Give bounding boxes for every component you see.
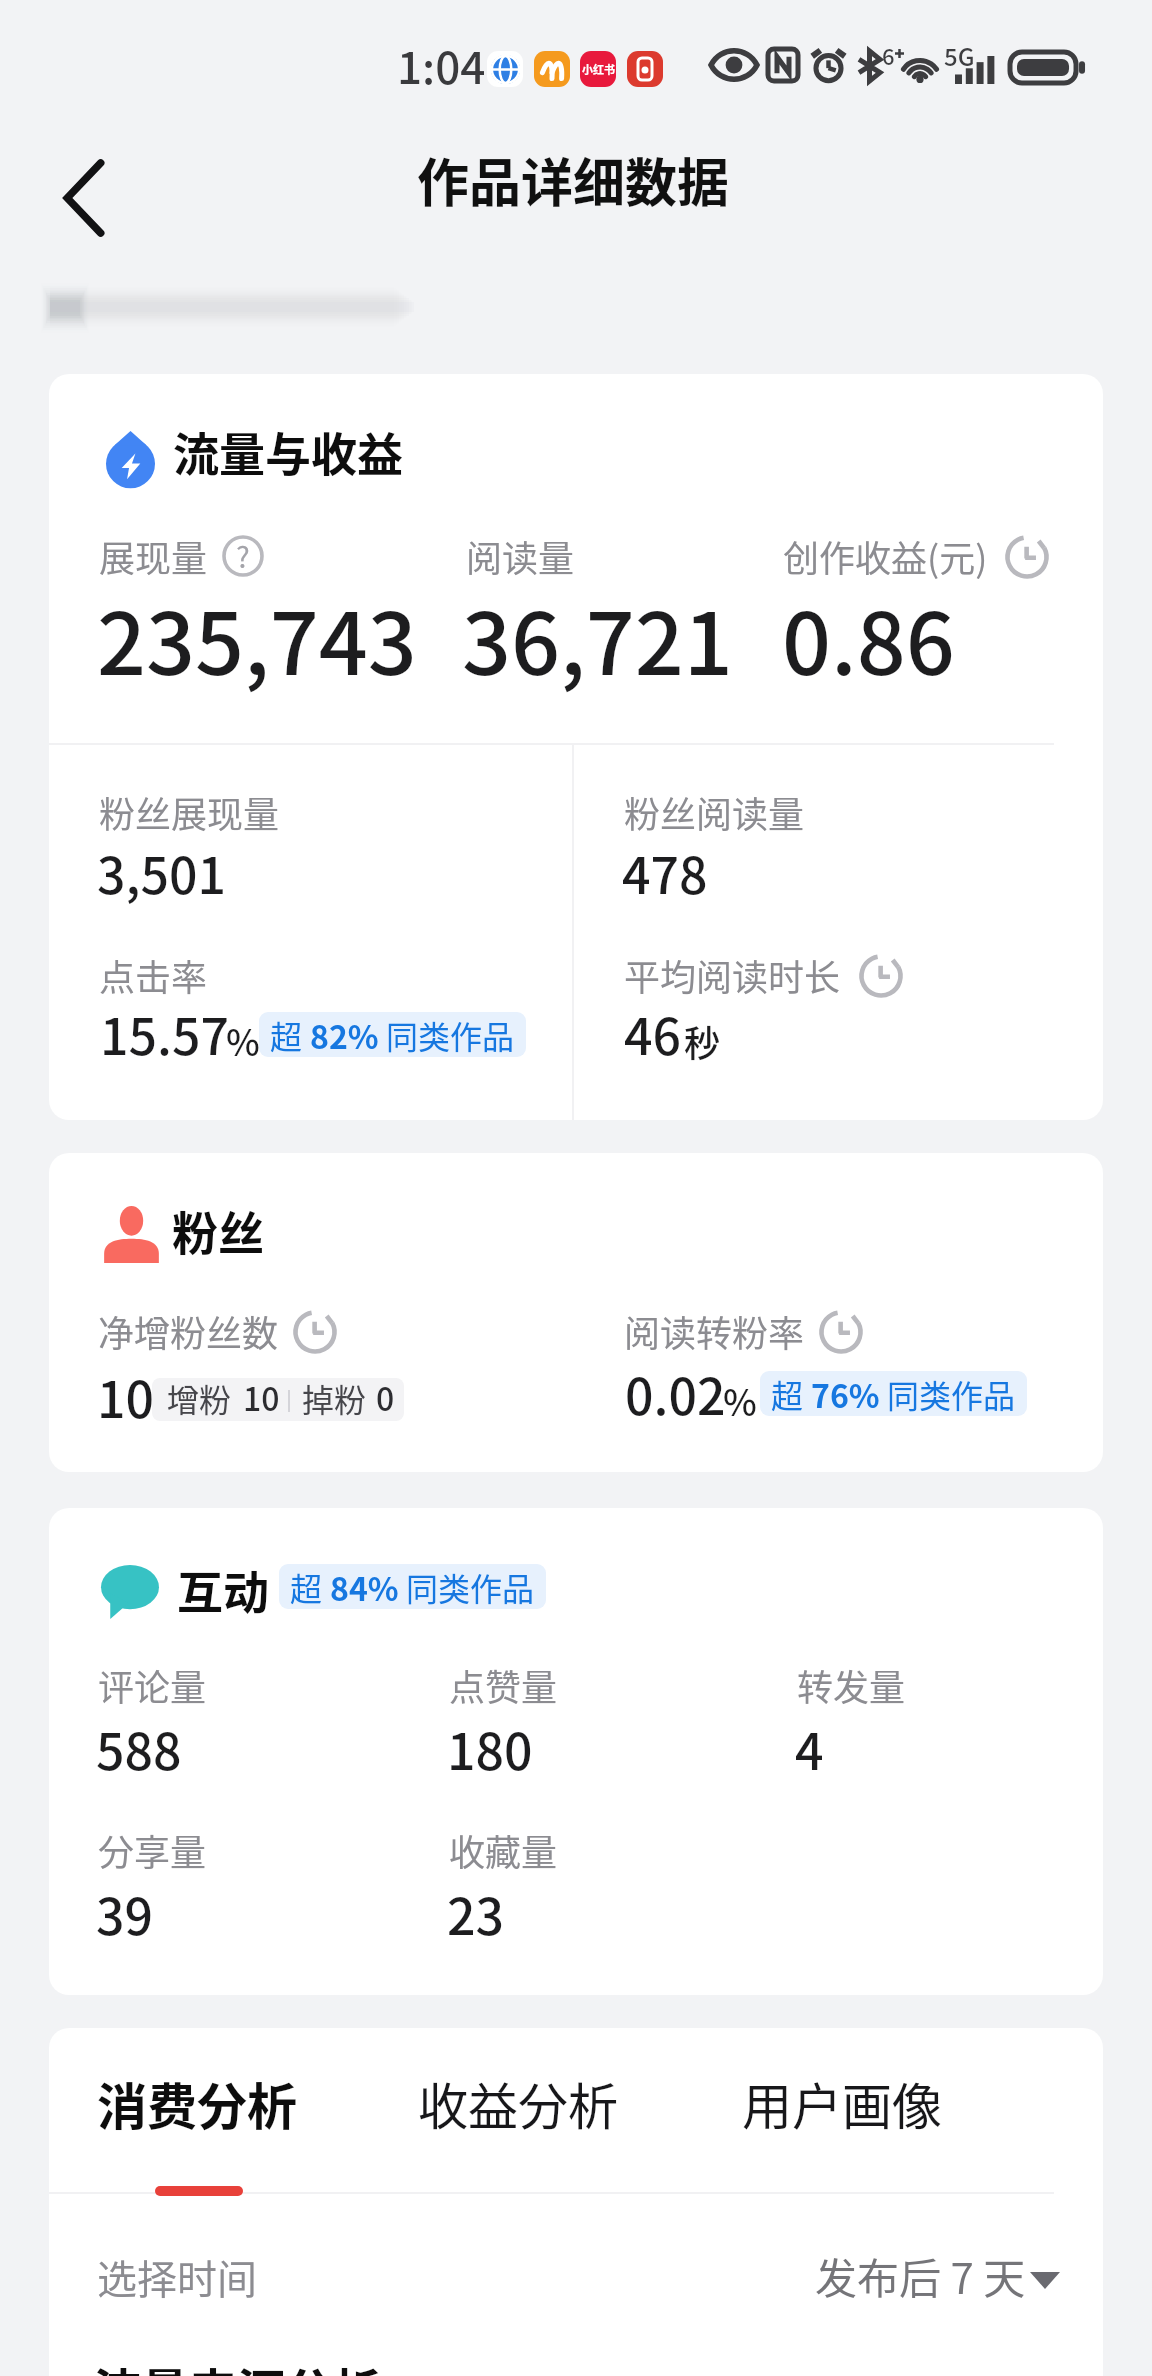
staticText: 用户画像 xyxy=(742,2067,942,2139)
staticText: 分享量 xyxy=(98,1824,207,1876)
button[interactable]: 点击率 15.57% xyxy=(95,950,555,1075)
staticText: 阅读量 xyxy=(466,530,575,582)
staticText: 超 xyxy=(270,1012,303,1057)
staticText: 46 xyxy=(624,997,681,1069)
staticText: 84% xyxy=(330,1564,399,1609)
staticText: % xyxy=(226,1014,260,1066)
staticText: 小红书 xyxy=(582,61,615,77)
staticText: 流量来源分析 xyxy=(93,2353,382,2376)
staticText: 0.86 xyxy=(782,575,955,700)
staticText: 评论量 xyxy=(98,1659,207,1711)
staticText: 互动 xyxy=(177,1556,269,1623)
staticText: % xyxy=(723,1374,757,1426)
staticText: 阅读转粉率 xyxy=(624,1305,805,1357)
button[interactable]: 平均阅读时长 46秒 xyxy=(620,950,1080,1075)
staticText: 作品详细数据 xyxy=(417,142,730,217)
button[interactable]: Net new followers updated periodically xyxy=(293,1310,337,1354)
staticText: 秒 xyxy=(684,1015,721,1067)
button[interactable]: 点赞量 180 xyxy=(446,1660,786,1785)
button[interactable]: Back xyxy=(21,128,147,268)
staticText: 点赞量 xyxy=(449,1659,558,1711)
staticText: 粉丝阅读量 xyxy=(624,786,805,838)
button[interactable]: 展现量 235,743 xyxy=(95,530,425,680)
staticText: 15.57 xyxy=(100,997,229,1069)
button[interactable]: 创作收益 0.86 元 xyxy=(780,530,1080,680)
button[interactable]: 阅读量 36,721 xyxy=(460,530,760,680)
staticText: 同类作品 xyxy=(406,1564,535,1609)
staticText: 6 xyxy=(882,39,895,71)
staticText: 0 xyxy=(376,1374,395,1420)
button[interactable]: Revenue updated periodically xyxy=(1005,535,1049,579)
staticText: 0.02 xyxy=(625,1357,726,1429)
staticText: 3,501 xyxy=(97,836,226,908)
staticText: 选择时间 xyxy=(97,2248,257,2306)
staticText: 588 xyxy=(96,1712,182,1784)
staticText: 收益分析 xyxy=(418,2067,618,2139)
staticText: 净增粉丝数 xyxy=(98,1305,279,1357)
button[interactable]: 转发量 4 xyxy=(794,1660,1094,1785)
staticText: 掉粉 xyxy=(302,1375,367,1421)
staticText: 180 xyxy=(447,1712,533,1784)
staticText: 收藏量 xyxy=(449,1824,558,1876)
staticText: 76% xyxy=(811,1371,880,1416)
staticText: 5G xyxy=(944,38,975,73)
staticText: 超 xyxy=(290,1564,323,1609)
staticText: 36,721 xyxy=(462,575,733,700)
staticText: 点击率 xyxy=(99,949,208,1001)
button[interactable]: 消费分析 xyxy=(74,2060,324,2152)
button[interactable]: Follower conversion updated periodically xyxy=(819,1310,863,1354)
staticText: 同类作品 xyxy=(887,1371,1016,1416)
staticText: 增粉 xyxy=(167,1375,232,1421)
staticText: 超 xyxy=(771,1371,804,1416)
staticText: 10 xyxy=(243,1374,280,1420)
staticText: ? xyxy=(236,534,250,576)
button[interactable]: 收益分析 xyxy=(397,2060,637,2152)
staticText: 平均阅读时长 xyxy=(624,949,841,1001)
staticText: 478 xyxy=(622,836,708,908)
button[interactable]: 评论量 588 xyxy=(95,1660,435,1785)
button[interactable]: 粉丝展现量 3,501 xyxy=(95,786,555,906)
staticText: 1:04 xyxy=(397,33,486,97)
staticText: 39 xyxy=(96,1877,153,1949)
staticText: 创作收益(元) xyxy=(783,530,988,582)
staticText: 4 xyxy=(795,1712,824,1784)
staticText: 23 xyxy=(447,1877,504,1949)
staticText: 展现量 xyxy=(99,530,208,582)
staticText: 10 xyxy=(97,1360,154,1432)
staticText: 235,743 xyxy=(97,575,417,700)
staticText: 同类作品 xyxy=(386,1012,515,1057)
staticText: 转发量 xyxy=(797,1659,906,1711)
button[interactable]: About impressions xyxy=(222,535,264,577)
button[interactable]: 收藏量 23 xyxy=(446,1825,786,1950)
staticText: 82% xyxy=(310,1012,379,1057)
button[interactable]: 分享量 39 xyxy=(95,1825,435,1950)
button[interactable]: 用户画像 xyxy=(721,2060,961,2152)
staticText: 消费分析 xyxy=(97,2067,297,2139)
staticText: 流量与收益 xyxy=(173,418,403,485)
button[interactable]: Average reading time updated periodicall… xyxy=(859,954,903,998)
button[interactable]: 发布后 7 天 xyxy=(800,2240,1075,2320)
staticText: 发布后 7 天 xyxy=(815,2245,1026,2306)
staticText: 粉丝展现量 xyxy=(99,786,280,838)
staticText: 粉丝 xyxy=(172,1197,264,1264)
button[interactable]: 粉丝阅读量 478 xyxy=(620,786,1080,906)
